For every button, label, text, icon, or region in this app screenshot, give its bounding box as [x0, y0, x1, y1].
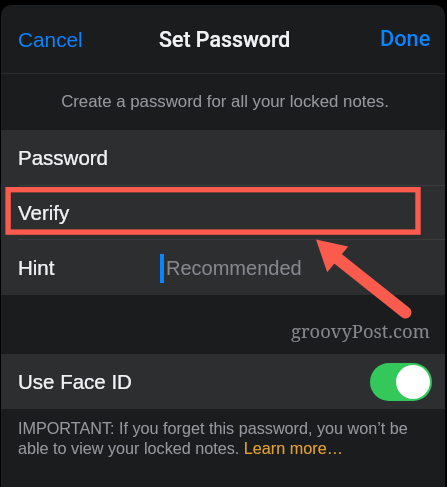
staticText: Use Face ID	[18, 370, 132, 393]
button[interactable]: Done	[366, 15, 445, 63]
staticText: Cancel	[18, 28, 83, 51]
button[interactable]: Use Face ID	[1, 354, 445, 409]
staticText: Hint	[18, 256, 55, 279]
button[interactable]: Use Face ID toggle	[370, 363, 432, 401]
staticText: Verify	[18, 201, 70, 224]
staticText: Done	[380, 26, 431, 52]
staticText: Set Password	[159, 27, 291, 52]
staticText: Recommended	[166, 257, 302, 279]
staticText: Password	[18, 146, 109, 169]
staticText: IMPORTANT: If you forget this password, …	[18, 419, 428, 458]
button[interactable]: Cancel	[1, 17, 100, 62]
button[interactable]: Verify	[1, 186, 445, 239]
staticText: groovyPost.com	[291, 318, 430, 343]
button[interactable]: Hint	[1, 240, 445, 295]
staticText: Create a password for all your locked no…	[61, 92, 389, 111]
button[interactable]: Password	[1, 130, 445, 185]
